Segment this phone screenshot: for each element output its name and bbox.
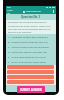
button[interactable]: E. Nikola Tesla designed the circuit xyxy=(8,55,54,60)
button[interactable]: B. Thomas Edison made the first call xyxy=(8,40,54,45)
staticText: SUBMIT ANSWER xyxy=(20,88,42,92)
staticText: D. Elisha Gray filed on the same day xyxy=(8,51,48,54)
button[interactable]: SUBMIT ANSWER xyxy=(17,86,45,93)
button[interactable] xyxy=(7,70,54,74)
button[interactable]: exam.site/quiz xyxy=(23,10,41,13)
button[interactable]: More options xyxy=(51,9,55,14)
staticText: 10:32 AM xyxy=(7,9,14,14)
button[interactable]: A. Alexander Graham Bell invented it xyxy=(8,35,54,40)
staticText: Complete the following sentence by choos… xyxy=(8,21,54,33)
staticText: A. Alexander Graham Bell invented it xyxy=(8,36,49,39)
staticText: E. Nikola Tesla designed the circuit xyxy=(8,56,46,59)
staticText: B. Thomas Edison made the first call xyxy=(8,41,48,44)
button[interactable] xyxy=(7,80,54,84)
button[interactable]: D. Elisha Gray filed on the same day xyxy=(8,50,54,55)
staticText: 9:41 xyxy=(7,6,12,9)
button[interactable]: Tabs xyxy=(7,9,14,14)
button[interactable] xyxy=(7,75,54,79)
button[interactable]: C. Antonio Meucci built the prototype xyxy=(8,45,54,50)
button[interactable] xyxy=(7,65,54,69)
staticText: C. Antonio Meucci built the prototype xyxy=(8,46,49,49)
staticText: F. None of the options listed above xyxy=(8,61,46,64)
staticText: exam.site/quiz xyxy=(26,10,41,13)
button[interactable]: F. None of the options listed above xyxy=(8,60,54,65)
staticText: Question No. 3 xyxy=(21,15,41,19)
